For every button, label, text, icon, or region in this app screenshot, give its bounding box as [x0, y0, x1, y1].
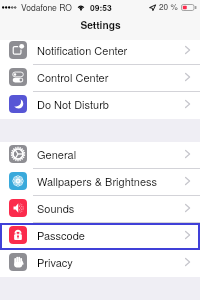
staticText: 20 %: [159, 1, 178, 13]
button[interactable]: Do Not Disturb: [0, 92, 200, 119]
staticText: Passcode: [37, 227, 85, 243]
staticText: Control Center: [37, 69, 109, 85]
button[interactable]: Notification Center: [0, 38, 200, 65]
staticText: Privacy: [37, 254, 73, 270]
staticText: Notification Center: [37, 42, 128, 58]
staticText: General: [37, 146, 77, 162]
button[interactable]: Sounds: [0, 196, 200, 223]
button[interactable]: Passcode: [0, 223, 200, 250]
staticText: Vodafone RO: [21, 1, 72, 13]
button[interactable]: Privacy: [0, 250, 200, 277]
staticText: Do Not Disturb: [37, 96, 109, 112]
staticText: 09:53: [90, 1, 112, 13]
staticText: Wallpapers & Brightness: [37, 173, 158, 189]
button[interactable]: General: [0, 142, 200, 169]
staticText: Sounds: [37, 200, 75, 216]
button[interactable]: Wallpapers & Brightness: [0, 169, 200, 196]
button[interactable]: Control Center: [0, 65, 200, 92]
staticText: Settings: [80, 18, 121, 33]
